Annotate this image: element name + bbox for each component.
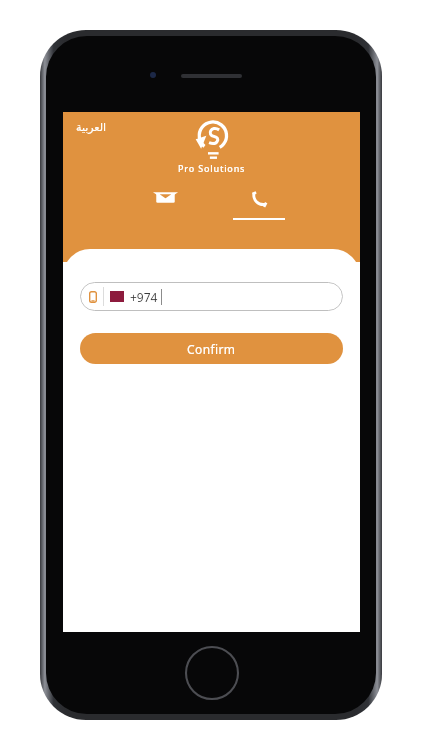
staticText: العربية (76, 121, 107, 134)
button[interactable]: العربية (72, 118, 111, 137)
staticText: Confirm (187, 341, 236, 357)
button[interactable]: Sign in with email (123, 190, 207, 217)
staticText: Pro Solutions (178, 162, 246, 174)
button[interactable]: Sign in with phone number (217, 190, 301, 220)
staticText: +974 (130, 289, 158, 305)
button[interactable]: Confirm (80, 333, 343, 364)
button[interactable]: +974 (80, 282, 343, 311)
